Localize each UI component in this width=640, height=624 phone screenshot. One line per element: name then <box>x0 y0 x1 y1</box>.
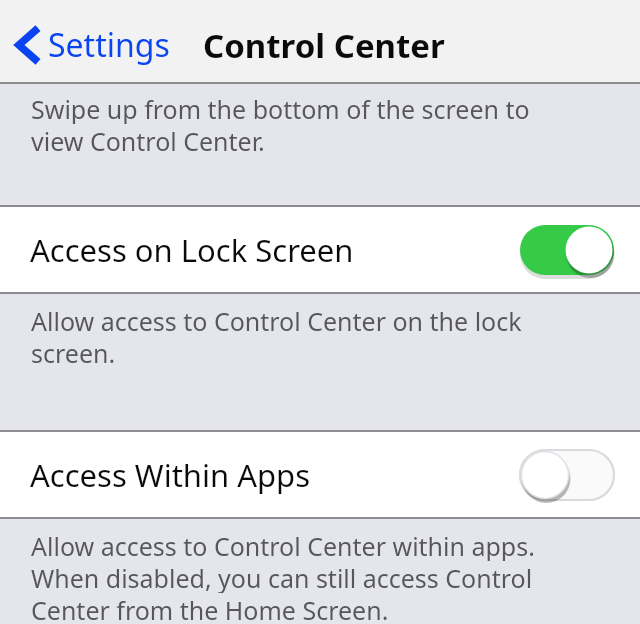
button[interactable]: Toggle, on <box>514 219 620 281</box>
staticText: Settings <box>48 23 170 67</box>
staticText: screen. <box>31 336 116 368</box>
staticText: Access on Lock Screen <box>30 229 514 271</box>
button[interactable]: Back <box>0 19 178 71</box>
staticText: When disabled, you can still access Cont… <box>31 561 533 593</box>
button[interactable]: Access Within Apps <box>0 432 640 517</box>
staticText: Swipe up from the bottom of the screen t… <box>31 92 530 124</box>
button[interactable]: Toggle, off <box>514 444 620 506</box>
staticText: Access Within Apps <box>30 454 514 496</box>
button[interactable]: Access on Lock Screen <box>0 207 640 292</box>
staticText: Control Center <box>203 23 445 68</box>
other: Back <box>16 27 40 63</box>
staticText: Center from the Home Screen. <box>31 593 389 624</box>
staticText: view Control Center. <box>31 124 265 156</box>
staticText: Allow access to Control Center within ap… <box>31 529 535 561</box>
staticText: Allow access to Control Center on the lo… <box>31 304 522 336</box>
